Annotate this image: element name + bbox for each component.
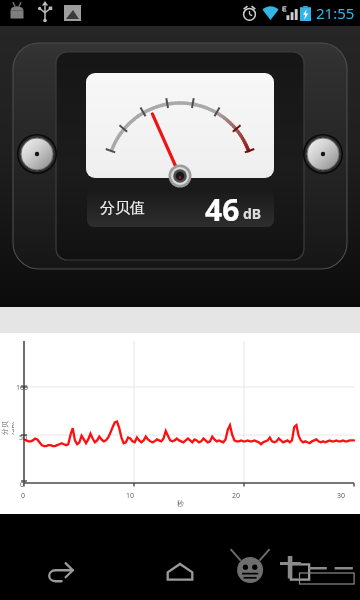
button[interactable]: Decibel history chart [0,333,360,514]
staticText: 0 [21,491,26,501]
staticText: 21:55 [316,3,355,23]
staticText: 46 [205,189,240,227]
staticText: 0 [20,480,25,490]
staticText: 秒 [177,499,184,508]
staticText: 分贝 (dB) [0,421,14,435]
staticText: 20 [232,491,241,501]
staticText: 10 [126,491,135,501]
button[interactable]: Recent apps [260,548,340,596]
staticText: 30 [337,491,346,501]
staticText: 100 [16,383,29,393]
staticText: 50 [19,433,28,443]
staticText: dB [243,204,262,223]
button[interactable]: Sound level meter [0,26,360,307]
button[interactable]: Home [140,548,220,596]
button[interactable]: Back [20,548,100,596]
staticText: 分贝值 [100,199,145,218]
